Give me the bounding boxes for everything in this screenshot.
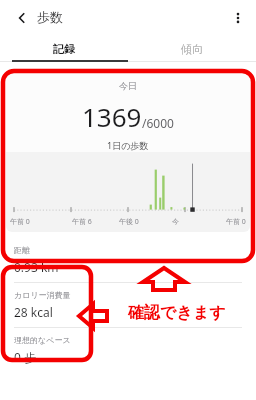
staticText: 確認できます (128, 303, 226, 323)
button[interactable]: 距離 (14, 238, 242, 282)
button[interactable]: カロリー消費量 (14, 283, 242, 327)
staticText: 距離 (14, 245, 30, 255)
staticText: 傾向 (181, 42, 203, 56)
staticText: 記録 (53, 42, 75, 56)
staticText: 午前 0 (226, 217, 246, 227)
staticText: 0.93 km (14, 259, 59, 275)
staticText: カロリー消費量 (14, 290, 71, 300)
staticText: 午後 0 (119, 217, 139, 227)
staticText: 理想的なペース (14, 335, 71, 345)
staticText: 1369 (82, 99, 142, 134)
button[interactable]: 今日 (6, 68, 250, 232)
button[interactable]: More options (226, 6, 250, 30)
button[interactable]: 理想的なペース (14, 328, 242, 372)
staticText: 歩数 (37, 9, 63, 25)
staticText: 1日の歩数 (107, 139, 149, 151)
button[interactable]: 記録 (0, 36, 128, 62)
staticText: 今 (172, 217, 179, 226)
staticText: 今日 (119, 80, 137, 91)
staticText: 0 歩 (14, 349, 36, 365)
button[interactable]: Back (10, 6, 34, 30)
staticText: 28 kcal (14, 304, 53, 320)
staticText: 午前 0 (10, 217, 30, 227)
button[interactable]: 傾向 (128, 36, 256, 62)
staticText: 午前 6 (72, 217, 92, 227)
staticText: /6000 (142, 115, 174, 131)
